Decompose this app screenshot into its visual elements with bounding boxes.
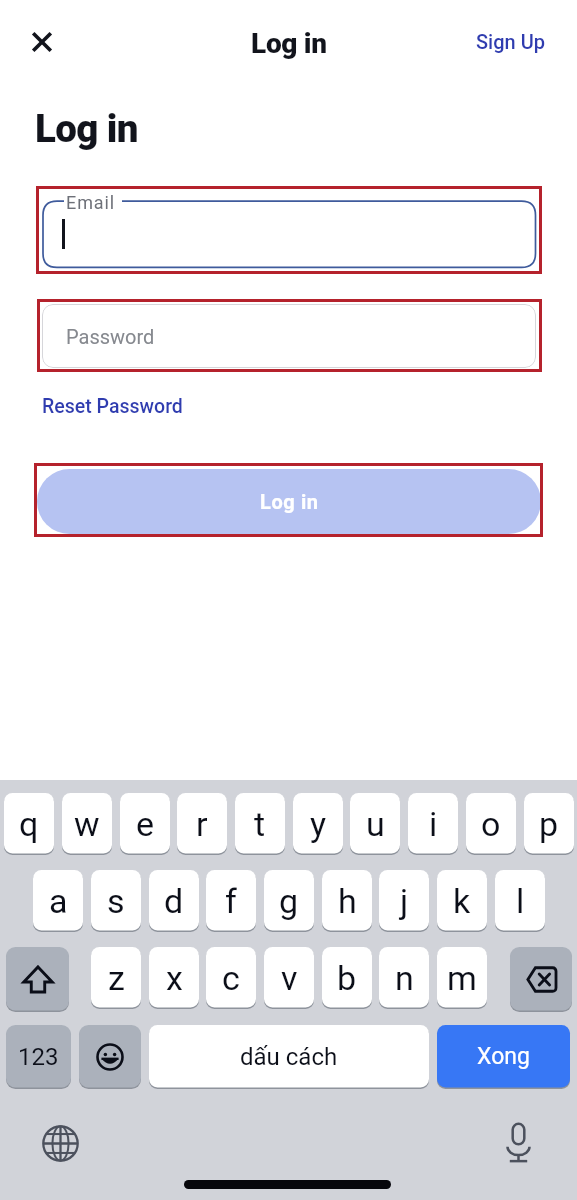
button[interactable]: Emoji keyboard: [79, 1025, 141, 1089]
button[interactable]: Xong: [437, 1025, 570, 1089]
button[interactable]: z: [91, 947, 141, 1009]
button[interactable]: Backspace: [510, 947, 572, 1012]
button[interactable]: q: [4, 793, 54, 855]
button[interactable]: u: [350, 793, 400, 855]
button[interactable]: o: [466, 793, 516, 855]
button[interactable]: m: [437, 947, 487, 1009]
staticText: s: [107, 881, 125, 921]
staticText: f: [225, 881, 237, 921]
staticText: Reset Password: [42, 395, 183, 418]
staticText: g: [279, 881, 299, 921]
button[interactable]: t: [235, 793, 285, 855]
staticText: Xong: [477, 1043, 530, 1070]
button[interactable]: f: [206, 870, 256, 932]
staticText: Log in: [35, 106, 138, 151]
button[interactable]: h: [322, 870, 372, 932]
button[interactable]: l: [495, 870, 545, 932]
staticText: y: [310, 804, 327, 844]
button[interactable]: b: [322, 947, 372, 1009]
staticText: Log in: [251, 27, 327, 60]
button[interactable]: Password: [37, 299, 542, 372]
staticText: c: [222, 958, 240, 998]
button[interactable]: i: [408, 793, 458, 855]
staticText: a: [49, 881, 68, 921]
staticText: q: [19, 804, 39, 844]
button[interactable]: Switch keyboard: [38, 1121, 82, 1165]
button[interactable]: Reset Password: [42, 395, 183, 418]
button[interactable]: v: [264, 947, 314, 1009]
staticText: Password: [66, 325, 155, 348]
staticText: k: [453, 881, 471, 921]
button[interactable]: d: [149, 870, 199, 932]
button[interactable]: r: [177, 793, 227, 855]
staticText: l: [516, 881, 525, 921]
staticText: Sign Up: [476, 30, 545, 53]
staticText: p: [539, 804, 559, 844]
staticText: Email: [66, 192, 116, 213]
staticText: z: [108, 958, 125, 998]
staticText: o: [481, 804, 501, 844]
button[interactable]: k: [437, 870, 487, 932]
staticText: i: [429, 804, 438, 844]
staticText: j: [400, 881, 409, 921]
staticText: n: [395, 958, 414, 998]
button[interactable]: g: [264, 870, 314, 932]
button[interactable]: a: [33, 870, 83, 932]
button[interactable]: p: [524, 793, 574, 855]
button[interactable]: w: [62, 793, 112, 855]
button[interactable]: Sign Up: [476, 30, 545, 53]
button[interactable]: e: [120, 793, 170, 855]
staticText: d: [164, 881, 184, 921]
button[interactable]: Dictation: [496, 1121, 540, 1165]
staticText: v: [281, 958, 298, 998]
staticText: x: [166, 958, 183, 998]
staticText: h: [338, 881, 357, 921]
button[interactable]: Log in: [34, 463, 543, 537]
button[interactable]: j: [379, 870, 429, 932]
button[interactable]: s: [91, 870, 141, 932]
staticText: 123: [18, 1043, 59, 1071]
button[interactable]: y: [293, 793, 343, 855]
button[interactable]: c: [206, 947, 256, 1009]
staticText: dấu cách: [240, 1043, 338, 1071]
button[interactable]: Close: [24, 24, 60, 60]
button[interactable]: Email: [36, 186, 542, 274]
staticText: r: [196, 804, 208, 844]
button[interactable]: x: [149, 947, 199, 1009]
staticText: e: [136, 804, 155, 844]
button[interactable]: 123: [6, 1025, 71, 1089]
button[interactable]: n: [379, 947, 429, 1009]
button[interactable]: dấu cách: [149, 1025, 429, 1089]
staticText: b: [337, 958, 357, 998]
staticText: u: [366, 804, 385, 844]
staticText: m: [447, 958, 477, 998]
staticText: Log in: [260, 490, 319, 513]
staticText: t: [254, 804, 266, 844]
button[interactable]: Shift: [6, 947, 69, 1012]
staticText: w: [74, 804, 100, 844]
